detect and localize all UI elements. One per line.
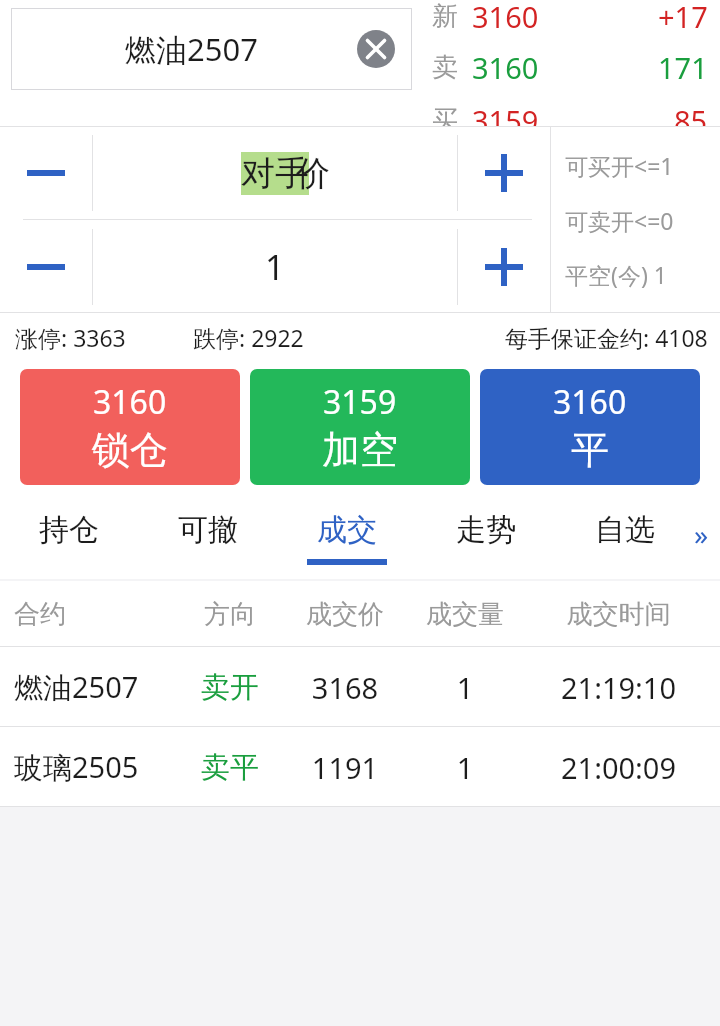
staticText: 171 xyxy=(658,48,708,87)
button[interactable]: 3159 xyxy=(250,369,470,485)
staticText: +17 xyxy=(658,0,708,36)
staticText: 3160 xyxy=(472,0,539,36)
staticText: 合约 xyxy=(14,598,175,631)
staticText: 玻璃2505 xyxy=(14,747,175,787)
staticText: 3160 xyxy=(93,380,167,424)
staticText: 1 xyxy=(265,244,285,290)
staticText: 价 xyxy=(296,152,330,195)
button[interactable]: 燃油2507 xyxy=(11,8,412,90)
staticText: 1191 xyxy=(285,748,405,787)
staticText: 持仓 xyxy=(39,511,99,549)
staticText: 锁仓 xyxy=(92,426,168,474)
staticText: 买 xyxy=(432,104,458,137)
button[interactable]: 持仓 xyxy=(0,493,138,581)
staticText: 每手保证金约: 4108 xyxy=(505,322,708,353)
staticText: 卖 xyxy=(432,51,458,84)
staticText: 成交 xyxy=(317,511,377,549)
staticText: 平空(今) 1 xyxy=(565,259,667,290)
staticText: 对手 xyxy=(241,152,309,195)
staticText: 自选 xyxy=(595,511,655,549)
button[interactable]: Increase xyxy=(458,220,550,313)
staticText: 走势 xyxy=(456,511,516,549)
staticText: 新 xyxy=(432,0,458,33)
staticText: 21:19:10 xyxy=(525,668,712,707)
staticText: 成交量 xyxy=(405,598,525,631)
staticText: 3159 xyxy=(472,101,539,140)
button[interactable]: 可撤 xyxy=(138,493,277,581)
button[interactable]: 对手 xyxy=(93,127,457,219)
button[interactable]: More tabs xyxy=(694,493,720,581)
staticText: 1 xyxy=(405,748,525,787)
staticText: 卖开 xyxy=(175,669,285,706)
staticText: 可卖开<=0 xyxy=(565,205,674,236)
staticText: 1 xyxy=(405,668,525,707)
staticText: 涨停: 3363 xyxy=(15,322,126,353)
staticText: 3159 xyxy=(323,380,397,424)
button[interactable]: 3160 xyxy=(20,369,240,485)
staticText: 可撤 xyxy=(178,511,238,549)
staticText: 燃油2507 xyxy=(125,28,258,70)
button[interactable]: Decrease xyxy=(0,220,92,313)
staticText: 跌停: 2922 xyxy=(193,322,304,353)
button[interactable]: 走势 xyxy=(416,493,555,581)
staticText: 21:00:09 xyxy=(525,748,712,787)
button[interactable]: 自选 xyxy=(555,493,694,581)
button[interactable]: 成交 xyxy=(277,493,416,581)
staticText: 平 xyxy=(571,426,609,474)
staticText: 3160 xyxy=(553,380,627,424)
button[interactable]: 玻璃2505 xyxy=(0,727,720,807)
staticText: 燃油2507 xyxy=(14,667,175,707)
staticText: 85 xyxy=(674,101,708,140)
button[interactable]: Increase xyxy=(458,127,550,219)
staticText: 3160 xyxy=(472,48,539,87)
button[interactable]: 燃油2507 xyxy=(0,647,720,727)
staticText: » xyxy=(694,515,709,553)
staticText: 成交价 xyxy=(285,598,405,631)
button[interactable]: 3160 xyxy=(480,369,700,485)
button[interactable]: Decrease xyxy=(0,127,92,219)
staticText: 卖平 xyxy=(175,749,285,786)
staticText: 成交时间 xyxy=(525,598,712,631)
staticText: 可买开<=1 xyxy=(565,150,674,181)
button[interactable]: Clear xyxy=(356,29,396,69)
button[interactable]: 1 xyxy=(93,220,457,313)
staticText: 3168 xyxy=(285,668,405,707)
staticText: 加空 xyxy=(322,426,398,474)
staticText: 方向 xyxy=(175,598,285,631)
